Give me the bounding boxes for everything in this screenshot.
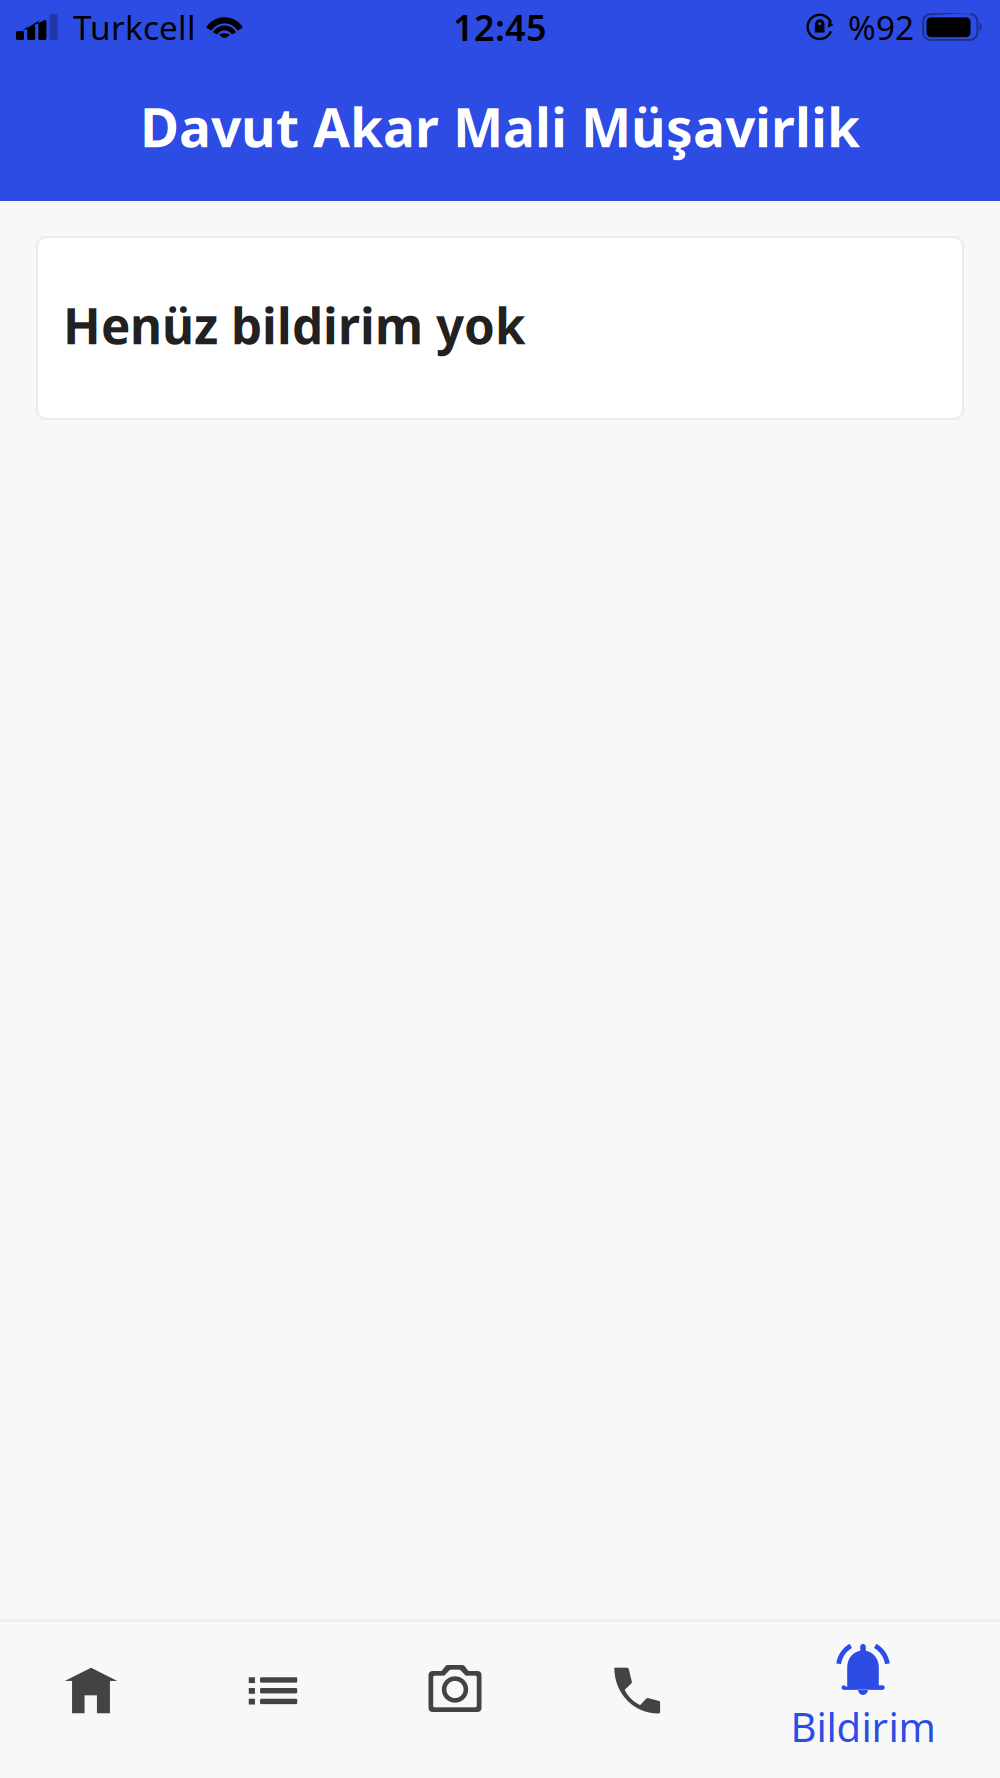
button[interactable]: Ana Sayfa bbox=[0, 1622, 182, 1778]
button[interactable]: Kamera bbox=[364, 1622, 546, 1778]
staticText: Bildirim bbox=[790, 1700, 935, 1753]
button[interactable]: Telefon bbox=[546, 1622, 728, 1778]
staticText: 12:45 bbox=[453, 3, 547, 51]
staticText: Turkcell bbox=[73, 5, 196, 49]
button[interactable]: Bildirim bbox=[772, 1622, 954, 1778]
button[interactable]: Liste bbox=[182, 1622, 364, 1778]
staticText: Davut Akar Mali Müşavirlik bbox=[140, 91, 860, 162]
staticText: Henüz bildirim yok bbox=[63, 292, 526, 358]
staticText: %92 bbox=[848, 5, 914, 49]
